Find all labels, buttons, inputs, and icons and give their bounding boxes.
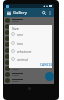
button[interactable] bbox=[4, 35, 54, 41]
button[interactable]: Search bbox=[41, 10, 47, 16]
staticText: Gallery bbox=[13, 10, 27, 16]
button[interactable] bbox=[4, 47, 54, 53]
button[interactable] bbox=[4, 41, 54, 47]
button[interactable] bbox=[4, 53, 54, 59]
button[interactable]: More options bbox=[47, 10, 53, 16]
button[interactable]: Add photo bbox=[45, 72, 54, 81]
button[interactable] bbox=[4, 17, 54, 23]
staticText: CANCEL bbox=[40, 62, 53, 66]
button[interactable] bbox=[4, 71, 54, 77]
staticText: one bbox=[17, 32, 24, 37]
button[interactable]: whatever bbox=[9, 47, 52, 55]
button[interactable]: two bbox=[9, 39, 52, 47]
button[interactable] bbox=[4, 59, 54, 65]
button[interactable]: one bbox=[9, 30, 52, 38]
button[interactable]: Open navigation drawer bbox=[6, 10, 12, 16]
button[interactable] bbox=[4, 29, 54, 35]
staticText: two bbox=[17, 41, 23, 46]
button[interactable] bbox=[4, 77, 54, 83]
staticText: animal bbox=[17, 57, 28, 62]
button[interactable] bbox=[4, 65, 54, 71]
staticText: whatever bbox=[17, 49, 32, 54]
button[interactable]: animal bbox=[9, 55, 52, 63]
button[interactable] bbox=[4, 23, 54, 29]
staticText: Size bbox=[12, 26, 19, 31]
button[interactable]: CANCEL bbox=[39, 61, 54, 67]
